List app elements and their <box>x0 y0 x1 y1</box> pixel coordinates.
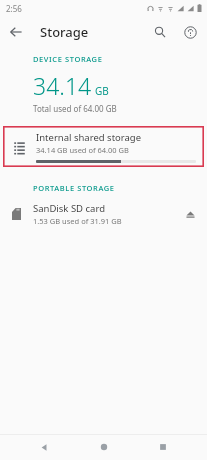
button[interactable]: Search <box>145 17 175 47</box>
staticText: SanDisk SD card <box>33 202 105 215</box>
staticText: Internal shared storage <box>36 131 142 144</box>
staticText: 34.14 GB used of 64.00 GB <box>36 145 129 155</box>
staticText: 2:56 <box>6 3 22 14</box>
button[interactable]: Help <box>175 17 205 47</box>
staticText: 1.53 GB used of 31.91 GB <box>33 216 122 226</box>
staticText: DEVICE STORAGE <box>33 54 103 64</box>
button[interactable]: Back <box>0 16 32 48</box>
staticText: 34.14 <box>33 70 92 101</box>
button[interactable]: Back <box>29 434 59 460</box>
button[interactable]: Eject SD card <box>176 200 204 228</box>
button[interactable]: Home <box>89 434 119 460</box>
staticText: Total used of 64.00 GB <box>33 103 117 114</box>
staticText: PORTABLE STORAGE <box>33 183 115 193</box>
button[interactable]: SanDisk SD card <box>0 197 207 231</box>
staticText: GB <box>95 84 109 98</box>
button[interactable]: Recent apps <box>148 434 178 460</box>
staticText: Storage <box>40 23 89 41</box>
button[interactable]: Internal shared storage <box>3 126 204 167</box>
